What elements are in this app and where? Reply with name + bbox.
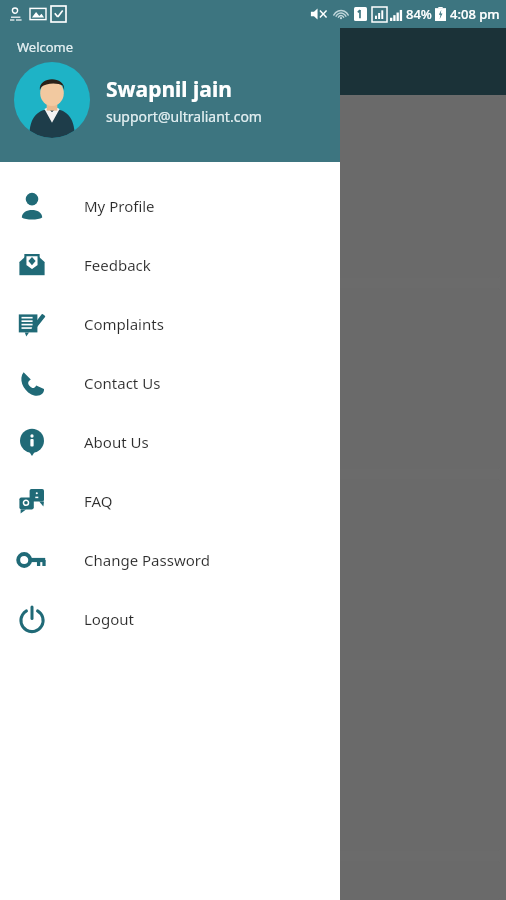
staticText: My Profile — [84, 196, 155, 216]
staticText: Welcome — [17, 38, 74, 56]
button[interactable]: News — [6, 670, 500, 851]
button[interactable]: Welcome — [0, 28, 340, 162]
staticText: General Enquiry — [14, 382, 120, 401]
button[interactable]: Career — [6, 861, 500, 900]
button[interactable]: Complaints — [0, 294, 340, 353]
staticText: Services/Products — [14, 191, 131, 210]
staticText: Swapnil jain — [106, 75, 232, 104]
staticText: Complaints — [84, 314, 164, 334]
staticText: Logout — [84, 609, 134, 629]
button[interactable]: FAQ — [0, 471, 340, 530]
staticText: FAQ — [84, 491, 113, 511]
button[interactable]: General Enquiry — [6, 288, 500, 469]
staticText: Contact Us — [84, 373, 161, 393]
staticText: 4:08 pm — [450, 5, 500, 23]
button[interactable]: About Us — [0, 412, 340, 471]
button[interactable]: Testimonial — [6, 479, 500, 660]
button[interactable]: Change Password — [0, 530, 340, 589]
staticText: 84% — [406, 5, 432, 23]
button[interactable]: Feedback — [0, 235, 340, 294]
button[interactable]: Contact Us — [0, 353, 340, 412]
button[interactable]: Logout — [0, 589, 340, 648]
staticText: Change Password — [84, 550, 210, 570]
staticText: About Us — [84, 432, 149, 452]
staticText: support@ultraliant.com — [106, 107, 262, 126]
button[interactable]: My Profile — [0, 176, 340, 235]
staticText: Feedback — [84, 255, 151, 275]
button[interactable]: Services/Products — [6, 97, 500, 278]
